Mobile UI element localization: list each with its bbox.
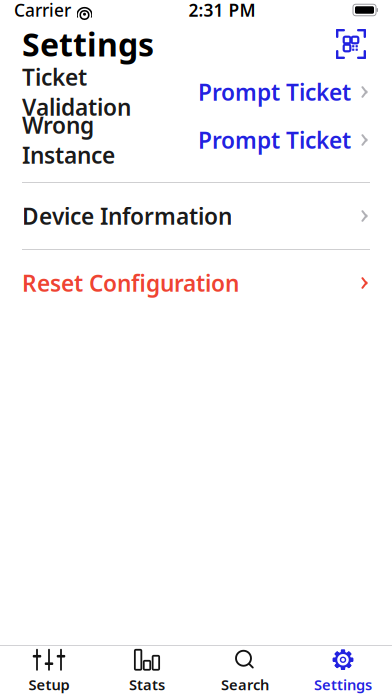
button[interactable]: Search: [196, 647, 294, 695]
button[interactable]: Device Information: [0, 192, 392, 240]
button[interactable]: Ticket Validation: [0, 68, 392, 116]
staticText: Wrong Instance: [22, 110, 115, 170]
staticText: Prompt Ticket: [198, 77, 351, 107]
staticText: Prompt Ticket: [198, 125, 351, 155]
button[interactable]: Wrong Instance: [0, 116, 392, 164]
button[interactable]: Setup: [0, 647, 98, 695]
button[interactable]: Settings: [294, 647, 392, 695]
button[interactable]: Reset Configuration: [0, 259, 392, 307]
staticText: Settings: [314, 675, 372, 694]
staticText: 2:31 PM: [188, 0, 255, 21]
staticText: Stats: [129, 675, 165, 694]
staticText: Search: [221, 675, 269, 694]
staticText: Settings: [22, 23, 154, 65]
button[interactable]: Stats: [98, 647, 196, 695]
staticText: Setup: [28, 675, 69, 694]
staticText: Device Information: [22, 201, 232, 231]
staticText: Reset Configuration: [22, 268, 239, 298]
staticText: Ticket Validation: [22, 62, 131, 122]
button[interactable]: Scan QR code: [332, 25, 370, 63]
staticText: Carrier: [14, 0, 71, 21]
